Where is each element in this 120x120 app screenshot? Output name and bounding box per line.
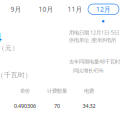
staticText: 11月 — [67, 5, 82, 14]
staticText: 10月 — [38, 5, 53, 14]
staticText: 供电单位 虔泽供电所 — [69, 37, 116, 44]
button[interactable]: 10月 — [34, 4, 58, 14]
staticText: 电费 — [84, 88, 94, 94]
staticText: 金额（元） — [0, 44, 19, 52]
button[interactable]: 9月 — [4, 4, 28, 14]
staticText: 计费数量 — [47, 88, 67, 94]
staticText: 70 — [54, 102, 60, 110]
staticText: 单价 — [20, 88, 30, 94]
staticText: 9月 — [10, 5, 21, 14]
staticText: 34.32 — [82, 102, 95, 110]
staticText: 电量（千瓦时） — [0, 71, 32, 79]
staticText: 用电日期 12月1日-5日 — [69, 29, 119, 36]
button[interactable]: 11月 — [63, 4, 87, 14]
staticText: 28.4 — [0, 28, 2, 46]
staticText: 12月 — [96, 5, 111, 14]
staticText: 去年同期电量48千瓦时 — [69, 58, 120, 65]
staticText: 同比增长45% — [73, 67, 103, 74]
button[interactable]: 12月 — [88, 4, 119, 14]
staticText: 0.490306 — [14, 102, 36, 110]
